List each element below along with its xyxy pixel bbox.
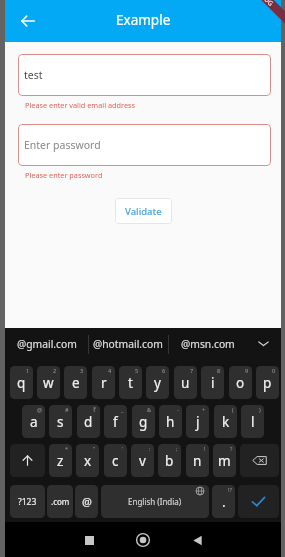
button[interactable]: ? (213, 444, 236, 477)
button[interactable]: & (132, 405, 155, 438)
staticText: 6 (162, 367, 166, 374)
button[interactable]: test (18, 54, 271, 96)
staticText: t (128, 374, 133, 392)
staticText: @ (82, 494, 92, 509)
button[interactable]: @ (22, 405, 45, 438)
staticText: 8 (217, 367, 221, 374)
staticText: @msn.com (181, 337, 235, 351)
button[interactable]: 7 (174, 366, 197, 399)
staticText: ! (204, 445, 206, 452)
staticText: * (65, 445, 69, 452)
staticText: ( (232, 406, 234, 413)
button[interactable]: Enter password (18, 124, 271, 166)
staticText: Example (116, 11, 171, 29)
staticText: g (139, 413, 148, 431)
button[interactable]: ?123 (10, 485, 45, 518)
staticText: y (154, 374, 161, 392)
button[interactable]: 4 (92, 366, 115, 399)
button[interactable]: Recents (62, 522, 116, 557)
staticText: j (196, 413, 200, 431)
staticText: Enter password (24, 138, 101, 152)
button[interactable]: Backspace (240, 444, 279, 477)
button[interactable]: : (131, 444, 154, 477)
staticText: 9 (245, 367, 249, 374)
button[interactable]: ( (214, 405, 237, 438)
button[interactable]: 0 (256, 366, 279, 399)
button[interactable]: !? (212, 485, 235, 518)
button[interactable]: More suggestions (246, 328, 281, 359)
button[interactable]: - (159, 405, 182, 438)
button[interactable]: ) (241, 405, 264, 438)
button[interactable]: ₹ (77, 405, 100, 438)
button[interactable]: @ (75, 485, 98, 518)
staticText: @hotmail.com (93, 337, 163, 351)
button[interactable]: 1 (10, 366, 33, 399)
staticText: test (24, 68, 43, 82)
button[interactable]: 9 (229, 366, 252, 399)
staticText: Please enter password (25, 170, 103, 180)
staticText: @gmail.com (17, 337, 77, 351)
button[interactable]: @msn.com (168, 328, 247, 359)
staticText: : (149, 445, 151, 452)
staticText: s (57, 413, 64, 431)
staticText: 7 (190, 367, 194, 374)
button[interactable]: Shift (10, 444, 45, 477)
button[interactable]: 3 (64, 366, 87, 399)
button[interactable]: Back (170, 522, 224, 557)
staticText: w (43, 374, 54, 392)
button[interactable]: # (49, 405, 72, 438)
staticText: - (177, 406, 179, 413)
staticText: p (263, 374, 272, 392)
button[interactable]: Home (116, 522, 170, 557)
button[interactable]: 8 (201, 366, 224, 399)
button[interactable]: 2 (37, 366, 60, 399)
staticText: c (112, 452, 119, 470)
button[interactable]: 5 (119, 366, 142, 399)
button[interactable]: Back (15, 8, 41, 34)
staticText: u (181, 374, 190, 392)
staticText: v (139, 452, 146, 470)
staticText: Please enter valid email address (25, 100, 135, 110)
staticText: 3 (80, 367, 84, 374)
staticText: !? (228, 486, 232, 493)
button[interactable]: .com (47, 485, 73, 518)
staticText: f (113, 413, 118, 431)
button[interactable]: English (India) (101, 485, 209, 518)
staticText: d (84, 413, 93, 431)
staticText: & (147, 406, 152, 413)
staticText: + (202, 406, 206, 413)
staticText: 2 (53, 367, 57, 374)
staticText: r (101, 374, 107, 392)
staticText: q (17, 374, 26, 392)
staticText: English (India) (128, 496, 182, 507)
staticText: a (30, 413, 38, 431)
staticText: x (84, 452, 92, 470)
staticText: ?123 (18, 496, 37, 508)
staticText: o (236, 374, 245, 392)
staticText: 4 (108, 367, 112, 374)
staticText: @ (37, 406, 42, 413)
staticText: DEBUG (253, 0, 276, 8)
staticText: ' (122, 445, 124, 452)
button[interactable]: 6 (146, 366, 169, 399)
button[interactable]: ! (186, 444, 209, 477)
button[interactable]: @hotmail.com (88, 328, 168, 359)
button[interactable]: @gmail.com (5, 328, 88, 359)
button[interactable]: " (76, 444, 99, 477)
button[interactable]: _ (104, 405, 127, 438)
button[interactable]: Validate (115, 198, 172, 224)
button[interactable]: ; (158, 444, 181, 477)
staticText: l (251, 413, 255, 431)
button[interactable]: * (49, 444, 72, 477)
button[interactable]: + (186, 405, 209, 438)
staticText: m (218, 452, 231, 470)
staticText: Validate (125, 205, 162, 218)
button[interactable]: ' (104, 444, 127, 477)
staticText: ₹ (93, 406, 97, 413)
staticText: ) (259, 406, 261, 413)
staticText: ? (230, 445, 233, 452)
button[interactable]: Enter (238, 485, 279, 518)
staticText: b (165, 452, 174, 470)
staticText: ; (176, 445, 178, 452)
staticText: z (57, 452, 64, 470)
